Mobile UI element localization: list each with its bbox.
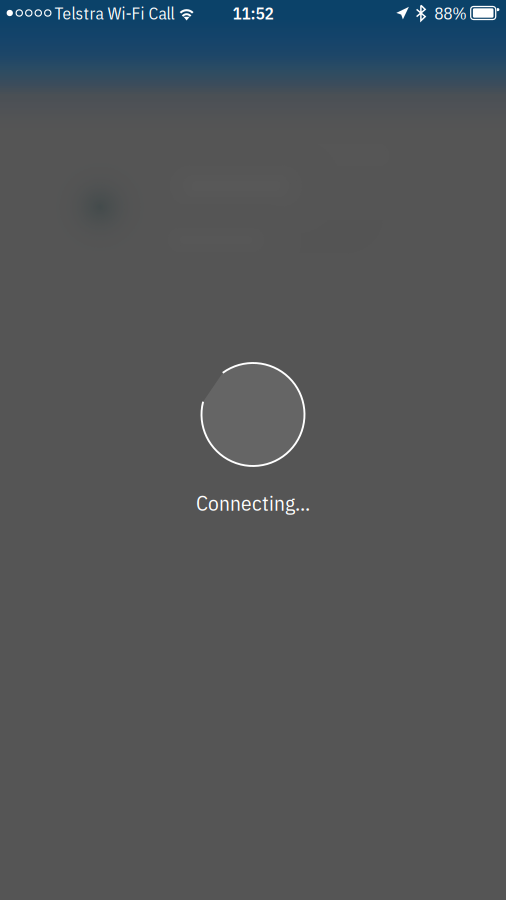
staticText: 88% bbox=[434, 2, 467, 24]
staticText: 11:52 bbox=[232, 2, 273, 24]
staticText: Telstra Wi-Fi Call bbox=[54, 2, 174, 24]
staticText: Connecting... bbox=[196, 489, 310, 517]
